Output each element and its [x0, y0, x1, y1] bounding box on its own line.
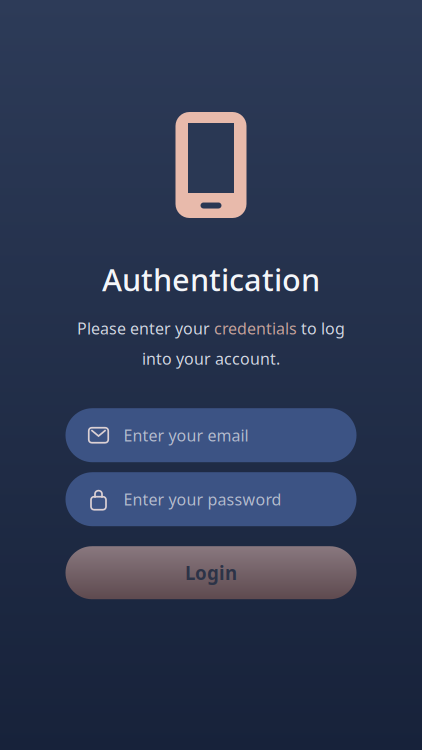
staticText: Enter your email: [123, 425, 248, 446]
staticText: credentials: [214, 318, 297, 339]
staticText: Authentication: [102, 259, 320, 300]
staticText: into your account.: [142, 348, 280, 369]
staticText: Enter your password: [123, 489, 281, 510]
button[interactable]: Enter your password: [65, 472, 356, 526]
staticText: Login: [185, 560, 237, 585]
staticText: to log: [297, 318, 345, 339]
button[interactable]: Enter your email: [65, 408, 356, 462]
button[interactable]: Login: [65, 546, 356, 599]
staticText: Please enter your: [77, 318, 214, 339]
